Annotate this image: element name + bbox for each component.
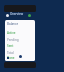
button[interactable]: Add [19, 55, 22, 58]
staticText: Balance [7, 22, 19, 26]
staticText: Sent [7, 44, 14, 48]
button[interactable] [4, 5, 36, 12]
staticText: Active [7, 31, 16, 35]
staticText: Total [7, 51, 14, 55]
staticText: Overview [10, 12, 24, 16]
staticText: Pending [7, 38, 19, 42]
button[interactable] [4, 62, 36, 68]
staticText: Done [7, 56, 15, 60]
